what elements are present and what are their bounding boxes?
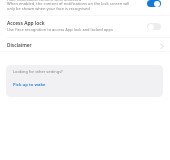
- button[interactable]: Turn off: [147, 0, 161, 7]
- staticText: Pick up to wake: [13, 82, 46, 88]
- button[interactable]: Access App lock: [0, 18, 170, 34]
- button[interactable]: Turn on: [147, 23, 161, 30]
- other: Open disclaimer: [159, 43, 166, 50]
- button[interactable]: Pick up to wake: [13, 82, 46, 88]
- staticText: Hide notification content until unlocked: [7, 0, 82, 2]
- staticText: Disclaimer: [7, 42, 157, 49]
- staticText: Access App lock: [7, 20, 45, 27]
- staticText: Looking for other settings?: [13, 69, 63, 74]
- staticText: Use Face recognition to access App lock …: [7, 27, 113, 32]
- staticText: When enabled, the content of notificatio…: [7, 1, 130, 6]
- staticText: only be shown when your face is recognis…: [7, 6, 90, 11]
- button[interactable]: Disclaimer: [0, 40, 170, 51]
